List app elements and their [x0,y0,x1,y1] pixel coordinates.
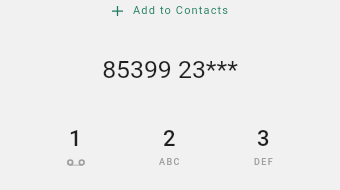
staticText: DEF [254,157,275,168]
staticText: 2 [163,126,176,152]
button[interactable]: Add to Contacts [106,1,236,20]
button[interactable]: 2 [122,123,216,172]
button[interactable]: 1 [29,123,122,169]
staticText: 85399 23*** [0,55,340,84]
staticText: 3 [257,126,270,152]
button[interactable]: 3 [216,123,310,172]
other: Voicemail [67,157,85,165]
staticText: Add to Contacts [133,4,230,17]
staticText: 1 [69,126,82,152]
staticText: ABC [159,157,181,168]
